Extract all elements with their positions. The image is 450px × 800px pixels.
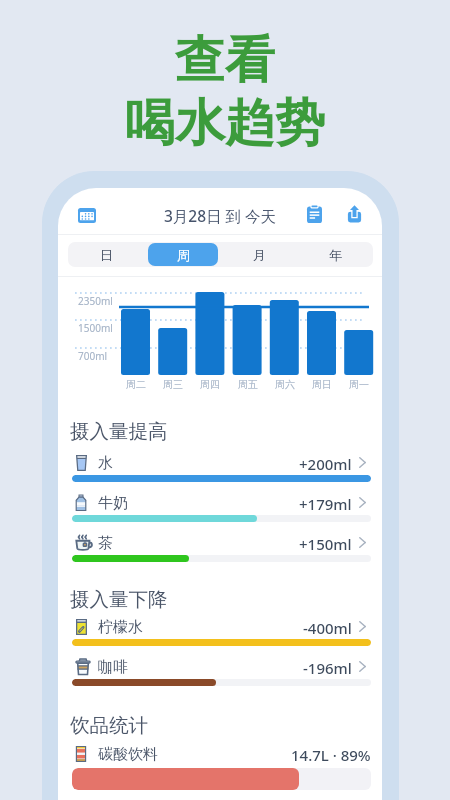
staticText: +179ml	[299, 494, 352, 511]
staticText: -196ml	[303, 658, 352, 675]
staticText: 日	[100, 247, 113, 263]
staticText: -400ml	[303, 618, 352, 635]
staticText: 年	[329, 247, 342, 263]
staticText: 月	[253, 247, 266, 263]
button[interactable]: 柠檬水	[58, 618, 382, 652]
staticText: 喝水趋势	[125, 92, 325, 155]
staticText: 周四	[200, 378, 220, 391]
staticText: 饮品统计	[70, 713, 148, 738]
button[interactable]: 周	[145, 242, 221, 267]
button[interactable]: 年	[297, 242, 373, 267]
staticText: 周二	[126, 378, 146, 391]
button[interactable]: 月	[221, 242, 297, 267]
staticText: 摄入量提高	[70, 419, 168, 444]
staticText: 柠檬水	[98, 618, 303, 635]
staticText: +200ml	[299, 454, 352, 471]
button[interactable]: 牛奶	[58, 494, 382, 528]
button[interactable]: 茶	[58, 534, 382, 568]
staticText: +150ml	[299, 534, 352, 551]
button[interactable]: Select date range	[67, 195, 107, 235]
button[interactable]: 水	[58, 454, 382, 488]
staticText: 周日	[312, 378, 332, 391]
staticText: 咖啡	[98, 658, 303, 675]
staticText: 周	[177, 247, 190, 263]
staticText: 14.7L · 89%	[291, 745, 371, 762]
button[interactable]: 碳酸饮料	[58, 745, 382, 791]
staticText: 1500ml	[78, 321, 113, 335]
staticText: 周六	[275, 378, 295, 391]
staticText: 2350ml	[78, 294, 113, 308]
staticText: 水	[98, 454, 299, 471]
staticText: 碳酸饮料	[98, 745, 291, 762]
staticText: 3月28日 到 今天	[58, 205, 382, 226]
staticText: 牛奶	[98, 494, 299, 511]
button[interactable]: Share	[334, 193, 375, 234]
staticText: 周三	[163, 378, 183, 391]
button[interactable]: 咖啡	[58, 658, 382, 692]
staticText: 查看	[175, 29, 275, 92]
staticText: 摄入量下降	[70, 587, 168, 612]
staticText: 茶	[98, 534, 299, 551]
staticText: 700ml	[78, 349, 108, 363]
button[interactable]: 日	[68, 242, 145, 267]
staticText: 周五	[238, 378, 258, 391]
button[interactable]: Notes	[294, 193, 335, 234]
staticText: 周一	[349, 378, 369, 391]
